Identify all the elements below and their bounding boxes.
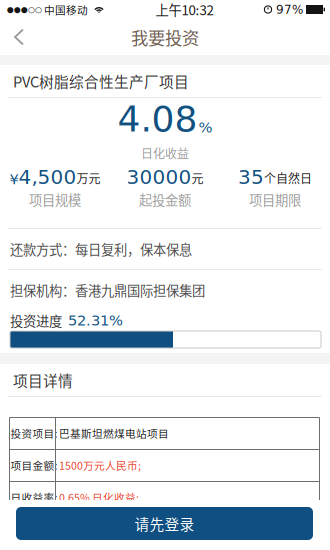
staticText: 日收益率: (10, 489, 57, 505)
staticText: 4.08 (117, 98, 197, 140)
staticText: 52.31% (68, 312, 123, 329)
staticText: 97% (272, 2, 303, 16)
staticText: 起投金额 (139, 190, 191, 209)
staticText: 中国移动 (42, 2, 88, 17)
button[interactable]: 请先登录 (16, 507, 313, 540)
staticText: ●●● (7, 5, 28, 14)
staticText: 每日复利，保本保息 (75, 239, 192, 259)
staticText: 万元 (76, 169, 100, 187)
staticText: 4,500 (18, 165, 76, 189)
staticText: 项目金额: (10, 457, 57, 473)
staticText: 个自然日 (264, 169, 312, 187)
staticText: 项目规模 (29, 190, 81, 209)
staticText: 0.65% 日化收益; (59, 489, 139, 505)
staticText: 我要投资 (131, 24, 199, 50)
staticText: 1500万元人民币; (59, 457, 141, 473)
staticText: ○○ (28, 5, 42, 14)
staticText: 30000 (126, 165, 191, 189)
staticText: 日化收益 (141, 144, 189, 162)
staticText: 投资项目: (10, 425, 57, 441)
button[interactable]: Back (0, 19, 38, 55)
staticText: % (198, 119, 212, 136)
staticText: 请先登录 (134, 513, 194, 534)
staticText: 项目详情 (13, 369, 73, 391)
staticText: 还款方式： (10, 239, 75, 259)
staticText: 项目期限 (249, 190, 301, 209)
staticText: PVC树脂综合性生产厂项目 (13, 70, 189, 92)
staticText: 上午10:32 (155, 0, 213, 19)
staticText: ¥ (9, 171, 18, 188)
staticText: 巴基斯坦燃煤电站项目 (59, 425, 169, 441)
staticText: 香港九鼎国际担保集团 (75, 280, 205, 300)
staticText: 35 (238, 165, 264, 189)
staticText: 投资进度 (10, 311, 62, 330)
staticText: 元 (191, 169, 203, 187)
staticText: 担保机构： (10, 280, 75, 300)
